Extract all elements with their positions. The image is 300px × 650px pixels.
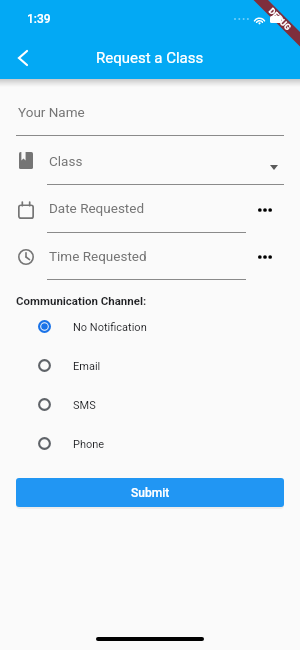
staticText: Communication Channel: [16, 294, 147, 307]
button[interactable]: Pick date [246, 193, 284, 227]
staticText: SMS [73, 399, 96, 412]
staticText: Date Requested [49, 200, 145, 216]
button[interactable]: Submit [16, 478, 284, 507]
button[interactable]: Time Requested [47, 233, 246, 280]
staticText: Phone [73, 438, 105, 451]
staticText: Your Name [18, 104, 85, 120]
staticText: 1:39 [27, 12, 51, 26]
button[interactable]: Class [47, 136, 284, 185]
staticText: Time Requested [49, 248, 147, 264]
staticText: Submit [131, 486, 170, 500]
button[interactable]: No Notification [0, 307, 300, 346]
staticText: No Notification [73, 321, 147, 334]
staticText: DEBUG [267, 6, 294, 33]
staticText: Request a Class [96, 49, 204, 67]
button[interactable]: Pick time [246, 240, 284, 274]
button[interactable]: Your Name [16, 79, 284, 136]
button[interactable]: Date Requested [47, 185, 246, 233]
staticText: Class [49, 153, 83, 169]
button[interactable]: Phone [0, 424, 300, 463]
staticText: Email [73, 360, 101, 373]
button[interactable]: SMS [0, 385, 300, 424]
button[interactable]: Back [0, 34, 45, 82]
button[interactable]: Email [0, 346, 300, 385]
